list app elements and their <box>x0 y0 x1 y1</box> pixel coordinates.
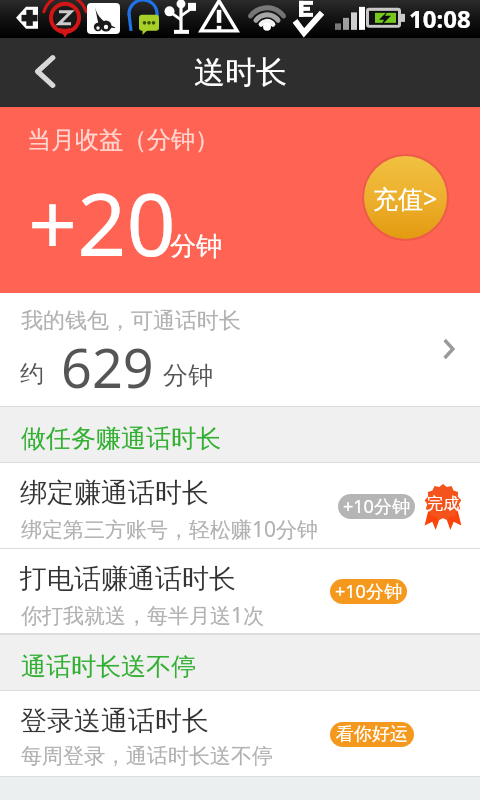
staticText: 送时长 <box>194 53 287 92</box>
staticText: 约 <box>20 359 44 389</box>
staticText: 完成 <box>427 494 459 514</box>
button[interactable]: 登录送通话时长 <box>0 691 480 777</box>
staticText: 绑定赚通话时长 <box>20 476 209 510</box>
button[interactable]: +10分钟 <box>330 579 407 604</box>
button[interactable]: 我的钱包，可通话时长 <box>0 293 480 406</box>
button[interactable]: +10分钟 <box>338 494 415 519</box>
staticText: 充值> <box>373 181 438 215</box>
staticText: 登录送通话时长 <box>20 704 209 738</box>
staticText: 绑定第三方账号，轻松赚10分钟 <box>21 515 319 544</box>
staticText: 当月收益（分钟） <box>27 125 219 155</box>
staticText: 10:08 <box>409 2 471 35</box>
staticText: 看你好运 <box>336 723 408 746</box>
button[interactable]: Back <box>0 38 90 107</box>
staticText: 打电话赚通话时长 <box>20 562 236 596</box>
staticText: 分钟 <box>163 360 213 391</box>
button[interactable]: 充值> <box>364 156 447 239</box>
staticText: 每周登录，通话时长送不停 <box>21 743 273 769</box>
button[interactable]: 打电话赚通话时长 <box>0 549 480 634</box>
staticText: 分钟 <box>170 230 222 263</box>
staticText: 通话时长送不停 <box>21 651 196 682</box>
button[interactable]: 看你好运 <box>330 722 414 747</box>
staticText: 你打我就送，每半月送1次 <box>21 601 265 630</box>
button[interactable]: 绑定赚通话时长 <box>0 463 480 549</box>
staticText: +20 <box>28 164 176 281</box>
staticText: 做任务赚通话时长 <box>21 423 221 454</box>
staticText: 我的钱包，可通话时长 <box>21 307 241 335</box>
staticText: 629 <box>61 330 154 404</box>
staticText: +10分钟 <box>335 579 402 604</box>
staticText: +10分钟 <box>343 494 410 519</box>
